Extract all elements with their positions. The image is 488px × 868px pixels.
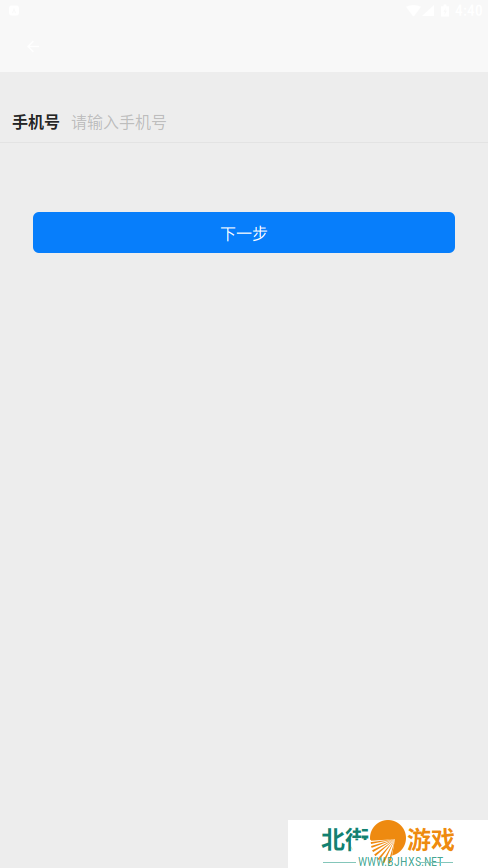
staticText: 北街 xyxy=(321,821,369,855)
button[interactable]: 下一步 xyxy=(33,212,455,253)
staticText: 手机号 xyxy=(12,109,60,133)
staticText: WWW.BJHXS.NET xyxy=(358,855,443,868)
staticText: 请输入手机号 xyxy=(71,109,167,133)
staticText: 下一步 xyxy=(220,221,268,244)
staticText: 游戏 xyxy=(407,821,455,855)
